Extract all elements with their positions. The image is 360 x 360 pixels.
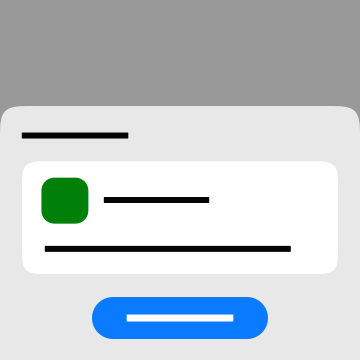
- button[interactable]: Item name, Item detail: [22, 161, 338, 274]
- button[interactable]: Continue: [92, 297, 268, 339]
